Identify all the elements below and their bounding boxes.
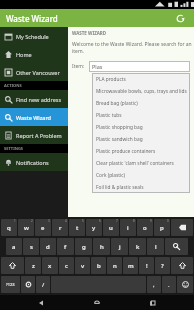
- staticText: Notifications: [16, 159, 49, 166]
- button[interactable]: c: [59, 257, 74, 274]
- button[interactable]: Search: [165, 238, 188, 255]
- staticText: !: [146, 262, 148, 270]
- staticText: 4: [65, 219, 67, 223]
- button[interactable]: /: [36, 276, 50, 293]
- button[interactable]: ,: [147, 276, 161, 293]
- button[interactable]: f: [57, 238, 74, 255]
- button[interactable]: Foil lid & plastic seals: [92, 181, 190, 193]
- button[interactable]: k: [129, 238, 146, 255]
- staticText: Welcome to the Waste Wizard. Please sear…: [72, 41, 194, 55]
- staticText: i: [127, 224, 129, 232]
- button[interactable]: Report A Problem: [0, 126, 68, 144]
- staticText: l: [155, 243, 157, 251]
- button[interactable]: a: [6, 238, 22, 255]
- staticText: 2: [31, 219, 33, 223]
- button[interactable]: g: [75, 238, 92, 255]
- button[interactable]: Keyboard settings: [21, 276, 35, 293]
- button[interactable]: l: [147, 238, 164, 255]
- button[interactable]: Delete: [171, 219, 193, 236]
- button[interactable]: Shift: [1, 257, 24, 274]
- staticText: Clear plastic 'clam shell' containers: [96, 160, 174, 167]
- button[interactable]: e: [35, 219, 51, 236]
- staticText: /: [42, 281, 45, 289]
- staticText: Cork (plastic): [96, 172, 126, 179]
- button[interactable]: d: [40, 238, 56, 255]
- button[interactable]: .: [162, 276, 176, 293]
- staticText: 0: [167, 219, 169, 223]
- staticText: .: [168, 281, 170, 289]
- staticText: 9: [150, 219, 152, 223]
- button[interactable]: j: [111, 238, 128, 255]
- button[interactable]: i: [120, 219, 136, 236]
- button[interactable]: o: [137, 219, 153, 236]
- staticText: x: [48, 262, 52, 270]
- staticText: 1: [14, 219, 16, 223]
- staticText: Other Vancouver Apps: [16, 69, 68, 76]
- button[interactable]: Recents: [138, 296, 168, 310]
- button[interactable]: PLA products: [92, 73, 190, 85]
- button[interactable]: ?123: [1, 276, 20, 293]
- button[interactable]: Plastic sandwich bag: [92, 133, 190, 145]
- button[interactable]: Notifications: [0, 153, 68, 171]
- button[interactable]: Cork (plastic): [92, 169, 190, 181]
- button[interactable]: Plastic tubs: [92, 109, 190, 121]
- button[interactable]: y: [86, 219, 102, 236]
- staticText: s: [30, 243, 33, 251]
- staticText: k: [136, 243, 140, 251]
- button[interactable]: w: [18, 219, 34, 236]
- button[interactable]: Other Vancouver Apps: [0, 63, 68, 81]
- button[interactable]: s: [23, 238, 39, 255]
- button[interactable]: m: [123, 257, 138, 274]
- staticText: n: [113, 262, 117, 270]
- button[interactable]: ?: [155, 257, 170, 274]
- button[interactable]: My Schedule: [0, 27, 68, 45]
- staticText: b: [97, 262, 101, 270]
- button[interactable]: Emoji: [177, 276, 193, 293]
- button[interactable]: Bread bag (plastic): [92, 97, 190, 109]
- button[interactable]: Back: [26, 296, 56, 310]
- staticText: a: [12, 243, 16, 251]
- button[interactable]: h: [93, 238, 110, 255]
- staticText: Bread bag (plastic): [96, 100, 138, 107]
- button[interactable]: Home: [82, 296, 112, 310]
- staticText: Microwavable bowls, cups, trays and lids…: [96, 88, 190, 95]
- button[interactable]: Waste Wizard: [0, 108, 68, 126]
- button[interactable]: x: [42, 257, 58, 274]
- staticText: PLA products: [96, 76, 126, 83]
- button[interactable]: n: [107, 257, 122, 274]
- button[interactable]: p: [154, 219, 170, 236]
- button[interactable]: q: [1, 219, 17, 236]
- button[interactable]: u: [103, 219, 119, 236]
- staticText: Home: [16, 51, 32, 58]
- button[interactable]: Clear plastic 'clam shell' containers: [92, 157, 190, 169]
- staticText: 6: [99, 219, 101, 223]
- staticText: h: [100, 243, 104, 251]
- button[interactable]: z: [25, 257, 41, 274]
- button[interactable]: Microwavable bowls, cups, trays and lids…: [92, 85, 190, 97]
- button[interactable]: t: [69, 219, 85, 236]
- staticText: Item:: [72, 63, 85, 70]
- button[interactable]: Shift: [171, 257, 193, 274]
- staticText: Waste Wizard: [16, 114, 51, 121]
- button[interactable]: Plastic produce containers: [92, 145, 190, 157]
- button[interactable]: Find new address: [0, 90, 68, 108]
- staticText: Plastic sandwich bag: [96, 136, 143, 143]
- staticText: t: [76, 224, 79, 232]
- button[interactable]: Refresh: [172, 10, 188, 26]
- button[interactable]: b: [91, 257, 106, 274]
- staticText: Plastic shopping bag: [96, 124, 143, 131]
- button[interactable]: r: [52, 219, 68, 236]
- button[interactable]: !: [139, 257, 154, 274]
- staticText: SETTINGS: [4, 146, 24, 151]
- staticText: Plas: [92, 63, 103, 70]
- staticText: r: [59, 224, 62, 232]
- button[interactable]: Plastic shopping bag: [92, 121, 190, 133]
- button[interactable]: Plas: [89, 61, 190, 72]
- staticText: Find new address: [16, 96, 62, 103]
- staticText: My Schedule: [16, 33, 49, 40]
- button[interactable]: Home: [0, 45, 68, 63]
- staticText: Foil lid & plastic seals: [96, 184, 144, 191]
- button[interactable]: v: [75, 257, 90, 274]
- staticText: w: [24, 224, 29, 232]
